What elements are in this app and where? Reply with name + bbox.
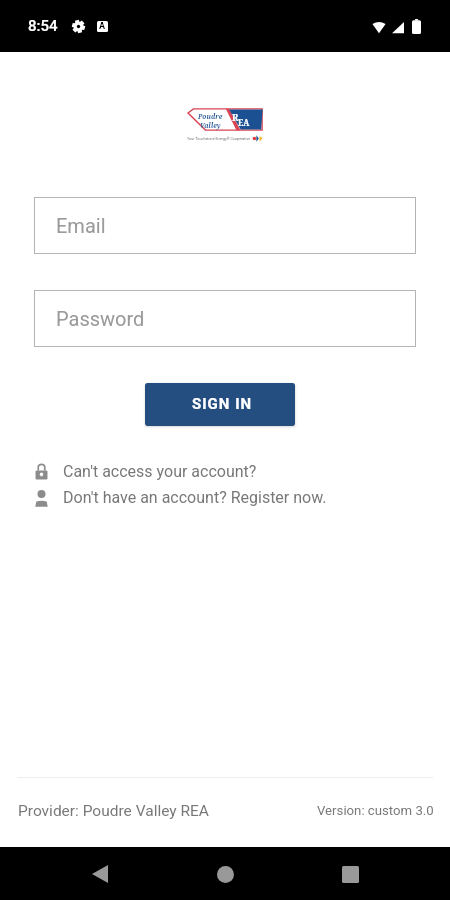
staticText: Poudre [198,112,223,121]
button[interactable]: Back [76,850,124,898]
staticText: Valley [200,121,221,130]
staticText: 8:54 [28,17,58,35]
staticText: R [232,111,239,123]
button[interactable]: Home [201,850,249,898]
staticText: Email [56,214,106,237]
button[interactable]: Recents [326,850,374,898]
button[interactable]: Email [34,197,416,254]
staticText: Don't have an account? Register now. [63,488,327,507]
button[interactable]: SIGN IN [145,383,295,426]
staticText: EA [238,117,250,128]
staticText: A [99,21,106,32]
button[interactable]: Password [34,290,416,347]
staticText: Version: custom 3.0 [317,803,434,818]
staticText: SIGN IN [192,395,253,413]
staticText: Password [56,307,145,330]
button[interactable]: Can't access your account? [35,462,430,481]
staticText: Your Touchstone Energy® Cooperative [187,137,251,141]
staticText: Can't access your account? [63,462,257,481]
staticText: Provider: Poudre Valley REA [18,802,209,820]
button[interactable]: Don't have an account? Register now. [35,488,430,507]
